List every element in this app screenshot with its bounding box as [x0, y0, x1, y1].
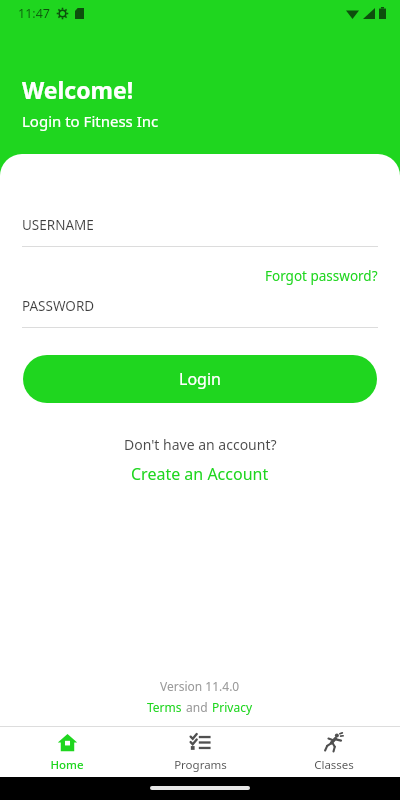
button[interactable]: Forgot password? [243, 265, 400, 287]
staticText: and [183, 699, 211, 715]
staticText: Forgot password? [265, 267, 378, 285]
button[interactable]: Create an Account [121, 461, 279, 487]
staticText: 11:47 [18, 5, 50, 22]
staticText: Login [179, 368, 221, 390]
button[interactable]: Programs [134, 727, 267, 777]
staticText: Privacy [212, 699, 253, 715]
staticText: PASSWORD [22, 297, 95, 315]
button[interactable]: Terms [146, 699, 183, 715]
staticText: Create an Account [131, 463, 269, 485]
staticText: Login to Fitness Inc [22, 111, 159, 131]
staticText: Home [50, 757, 84, 773]
button[interactable]: Login [23, 355, 377, 403]
staticText: Don't have an account? [124, 435, 277, 454]
staticText: Classes [314, 757, 354, 773]
button[interactable]: Classes [267, 727, 400, 777]
button[interactable]: Privacy [211, 699, 254, 715]
staticText: Terms [147, 699, 182, 715]
staticText: USERNAME [22, 216, 94, 234]
staticText: Programs [174, 757, 227, 773]
button[interactable]: Home [0, 727, 134, 777]
staticText: Version 11.4.0 [160, 678, 240, 694]
staticText: Welcome! [22, 74, 134, 105]
